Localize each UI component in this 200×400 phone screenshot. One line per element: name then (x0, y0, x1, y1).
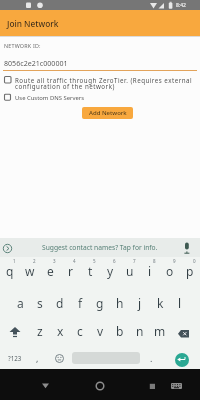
staticText: z (37, 323, 43, 339)
button[interactable] (141, 374, 165, 396)
staticText: 8056c2e21c000001 (4, 58, 68, 68)
button[interactable]: , (27, 349, 47, 367)
staticText: u (126, 263, 134, 279)
staticText: 2 (33, 258, 36, 264)
staticText: y (107, 263, 114, 279)
staticText: s (37, 295, 43, 311)
button[interactable]: Add Network (82, 107, 133, 119)
button[interactable]: c (70, 322, 90, 340)
button[interactable]: z (30, 322, 50, 340)
staticText: c (77, 323, 83, 339)
button[interactable]: b (110, 322, 130, 340)
staticText: . (150, 352, 153, 364)
button[interactable]: l (170, 294, 190, 312)
staticText: j (138, 295, 142, 311)
staticText: k (157, 295, 164, 311)
button[interactable] (180, 240, 195, 255)
staticText: Join Network (7, 18, 59, 29)
staticText: 3 (53, 258, 56, 264)
staticText: l (178, 295, 182, 311)
staticText: 9 (173, 258, 176, 264)
button[interactable]: a (10, 294, 30, 312)
staticText: h (116, 295, 124, 311)
button[interactable]: r (60, 262, 80, 280)
button[interactable] (175, 353, 189, 367)
button[interactable] (5, 324, 25, 340)
staticText: 4 (73, 258, 76, 264)
button[interactable]: g (90, 294, 110, 312)
staticText: m (154, 323, 166, 339)
staticText: p (186, 263, 194, 279)
staticText: 7 (133, 258, 136, 264)
button[interactable]: d (50, 294, 70, 312)
staticText: 8:42 (176, 2, 186, 9)
staticText: ?123 (8, 354, 22, 362)
button[interactable] (168, 376, 188, 396)
staticText: o (166, 263, 174, 279)
button[interactable]: w (20, 262, 40, 280)
button[interactable]: f (70, 294, 90, 312)
staticText: f (78, 295, 83, 311)
button[interactable]: 8056c2e21c000001 (2, 52, 198, 70)
button[interactable] (1, 242, 14, 255)
staticText: g (96, 295, 104, 311)
button[interactable]: u (120, 262, 140, 280)
button[interactable]: n (130, 322, 150, 340)
button[interactable]: i (140, 262, 160, 280)
staticText: d (56, 295, 64, 311)
button[interactable]: ?123 (2, 349, 28, 367)
staticText: Add Network (89, 109, 127, 117)
staticText: r (68, 263, 73, 279)
button[interactable]: s (30, 294, 50, 312)
button[interactable] (50, 350, 69, 366)
staticText: t (88, 263, 93, 279)
button[interactable]: Suggest contact names? Tap for info. (20, 238, 180, 257)
button[interactable]: Route all traffic through ZeroTier. (Req… (2, 74, 198, 92)
staticText: v (97, 323, 104, 339)
button[interactable]: Use Custom DNS Servers (2, 92, 198, 103)
staticText: Use Custom DNS Servers (15, 94, 84, 102)
staticText: i (148, 263, 152, 279)
staticText: n (136, 323, 144, 339)
button[interactable]: . (141, 349, 161, 367)
staticText: q (6, 263, 14, 279)
button[interactable]: e (40, 262, 60, 280)
button[interactable]: t (80, 262, 100, 280)
button[interactable]: h (110, 294, 130, 312)
staticText: e (47, 263, 54, 279)
staticText: 1 (13, 258, 16, 264)
button[interactable]: y (100, 262, 120, 280)
button[interactable]: q (0, 262, 20, 280)
staticText: 0 (193, 258, 196, 264)
staticText: b (116, 323, 124, 339)
button[interactable]: p (180, 262, 200, 280)
button[interactable] (175, 324, 195, 340)
button[interactable]: j (130, 294, 150, 312)
button[interactable]: v (90, 322, 110, 340)
staticText: a (17, 295, 24, 311)
button[interactable] (33, 374, 57, 396)
button[interactable]: o (160, 262, 180, 280)
staticText: x (57, 323, 64, 339)
staticText: Route all traffic through ZeroTier. (Req… (15, 76, 193, 91)
button[interactable] (88, 374, 112, 396)
button[interactable]: k (150, 294, 170, 312)
staticText: w (25, 263, 35, 279)
staticText: 6 (113, 258, 116, 264)
staticText: NETWORK ID: (4, 42, 41, 49)
staticText: Suggest contact names? Tap for info. (42, 243, 158, 252)
staticText: 8 (153, 258, 156, 264)
button[interactable]: m (150, 322, 170, 340)
staticText: , (36, 352, 39, 364)
button[interactable]: x (50, 322, 70, 340)
staticText: 5 (93, 258, 96, 264)
